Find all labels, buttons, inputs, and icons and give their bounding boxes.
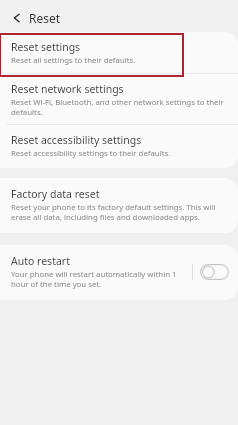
button[interactable]: Auto restart switch, off — [200, 264, 229, 280]
staticText: Reset accessibility settings to their de… — [11, 148, 171, 159]
staticText: Reset accessibility settings — [11, 133, 142, 147]
staticText: Reset — [29, 10, 61, 26]
staticText: Reset your phone to its factory default … — [11, 202, 232, 222]
button[interactable]: Back — [8, 9, 26, 27]
staticText: Reset settings — [11, 40, 81, 54]
button[interactable]: Reset settings — [0, 32, 238, 73]
staticText: Reset Wi-Fi, Bluetooth, and other networ… — [11, 97, 232, 117]
staticText: Reset network settings — [11, 82, 124, 96]
staticText: Factory data reset — [11, 187, 100, 201]
button[interactable]: Auto restart — [0, 245, 238, 300]
button[interactable]: Reset accessibility settings — [0, 125, 238, 168]
staticText: Auto restart — [11, 254, 70, 268]
button[interactable]: Reset network settings — [0, 74, 238, 124]
staticText: Your phone will restart automatically wi… — [11, 269, 192, 289]
staticText: Reset all settings to their defaults. — [11, 55, 136, 66]
button[interactable]: Factory data reset — [0, 178, 238, 233]
